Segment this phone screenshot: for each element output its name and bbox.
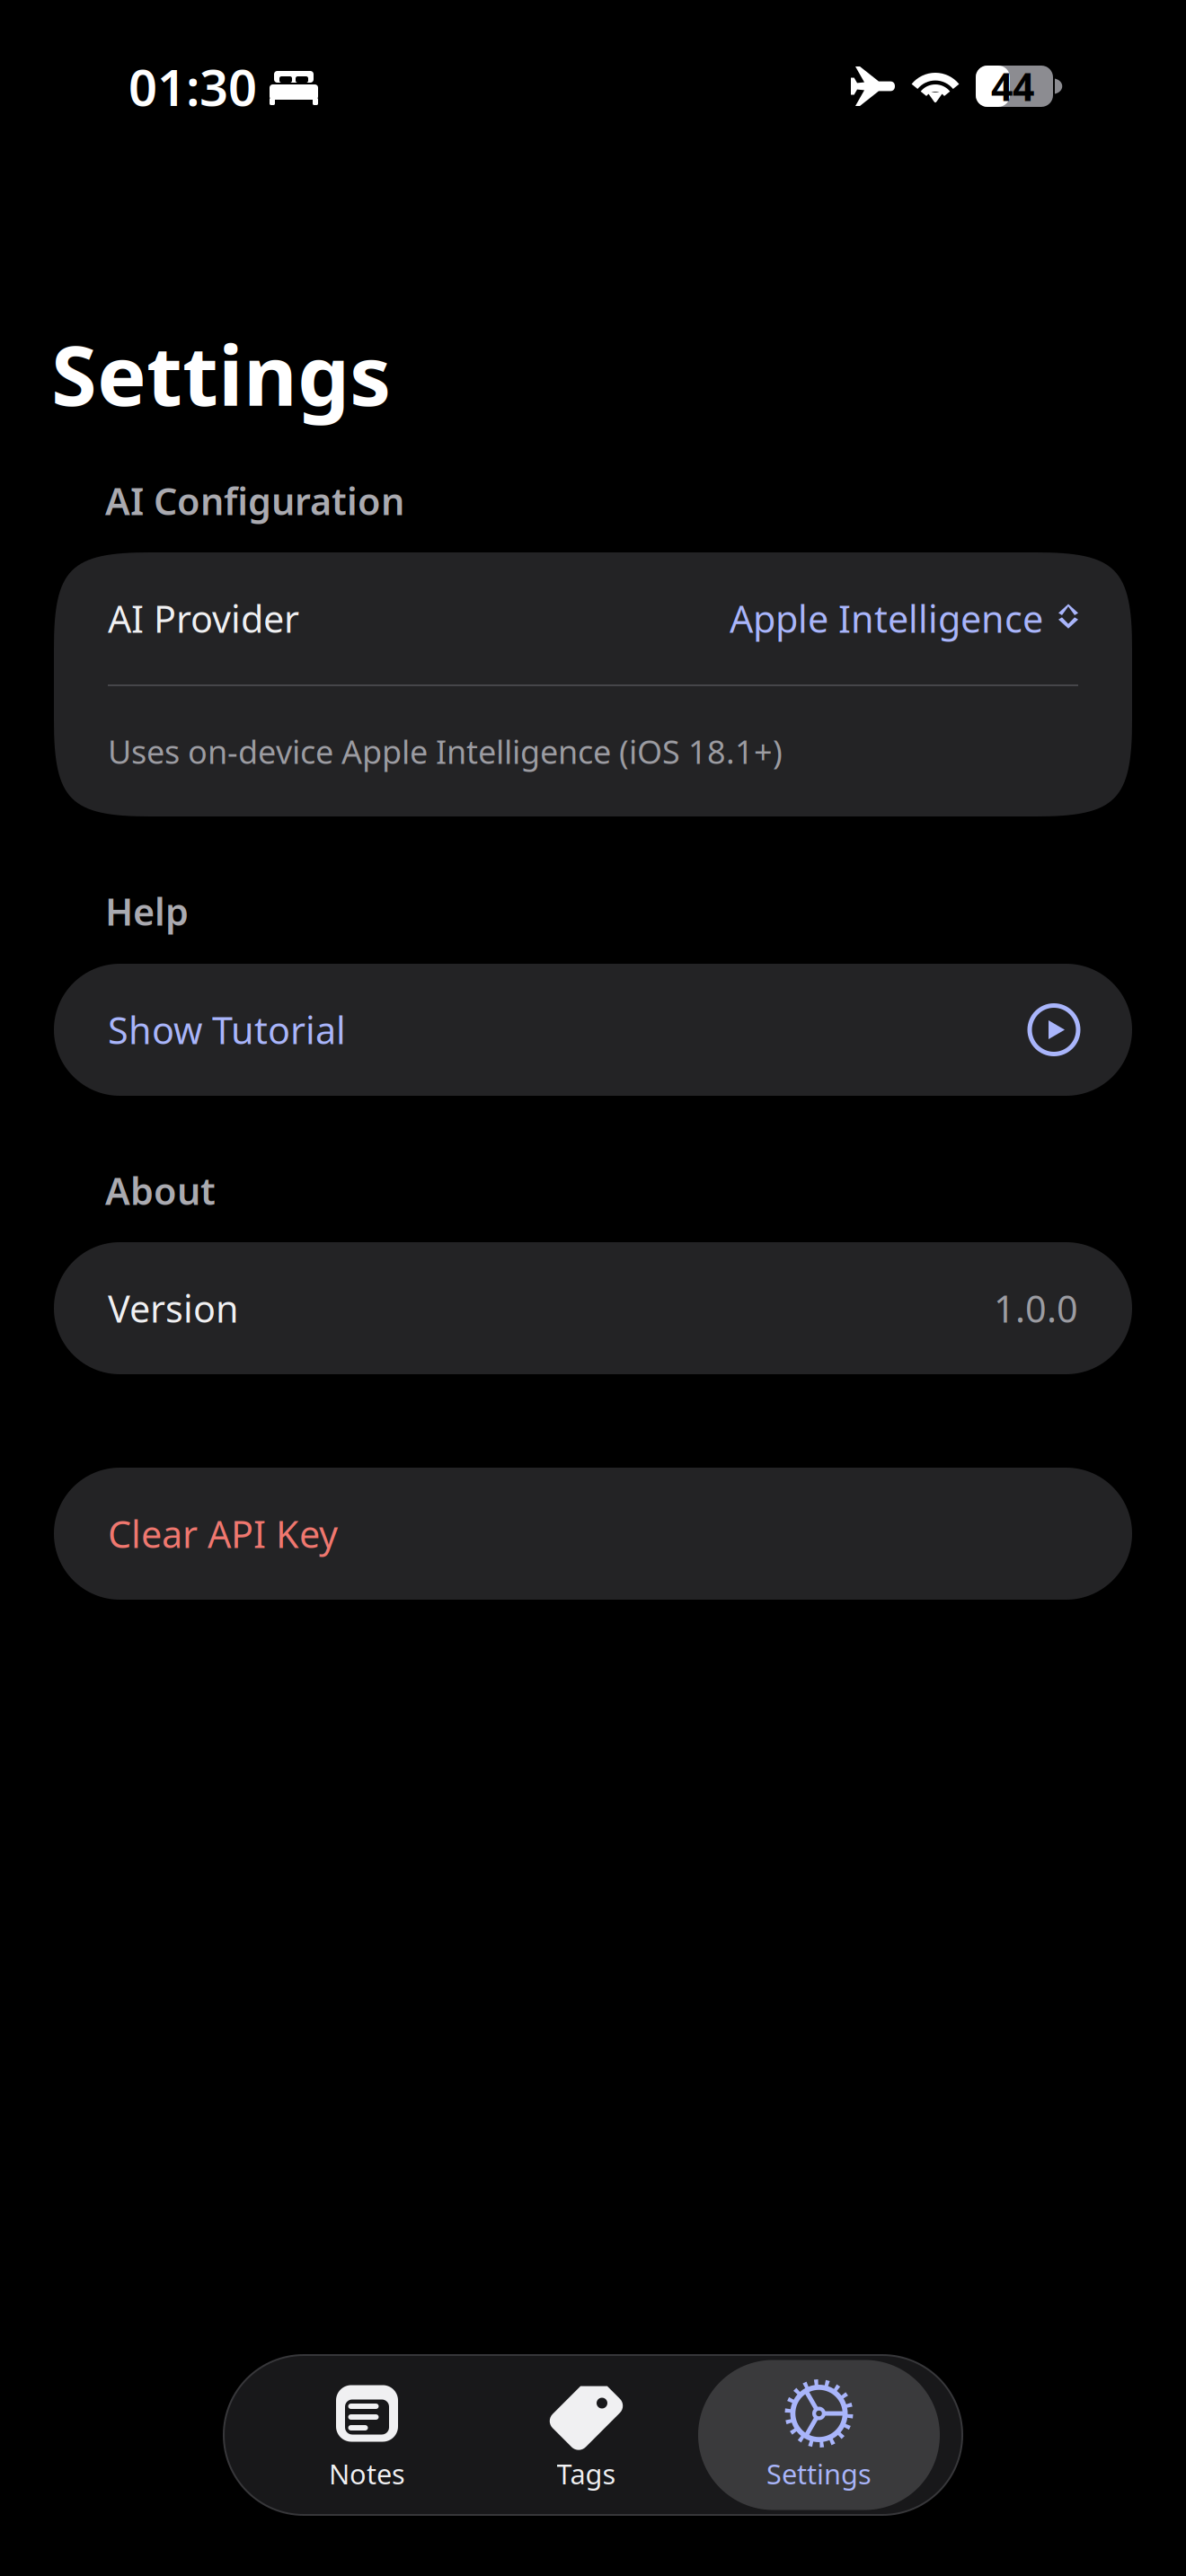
button[interactable]: Show Tutorial [54,964,1132,1096]
staticText: Settings [766,2455,872,2492]
staticText: 1.0.0 [994,1284,1078,1333]
staticText: AI Provider [108,594,299,643]
button[interactable]: Notes [246,2360,488,2510]
staticText: Apple Intelligence [730,594,1043,643]
staticText: Clear API Key [108,1509,338,1558]
staticText: Uses on-device Apple Intelligence (iOS 1… [108,730,783,773]
button[interactable]: Tags [465,2360,707,2510]
staticText: 44 [991,61,1034,112]
staticText: 01:30 [128,53,257,120]
staticText: AI Configuration [105,476,404,525]
staticText: Notes [329,2455,405,2492]
button[interactable]: Settings [698,2360,940,2510]
staticText: Show Tutorial [108,1005,346,1054]
staticText: Tags [557,2455,616,2492]
button[interactable]: Clear API Key [54,1468,1132,1600]
staticText: Settings [51,319,391,429]
staticText: Version [108,1284,239,1333]
staticText: Help [105,887,189,936]
button[interactable]: AI Provider [54,552,1132,684]
staticText: About [105,1166,216,1215]
